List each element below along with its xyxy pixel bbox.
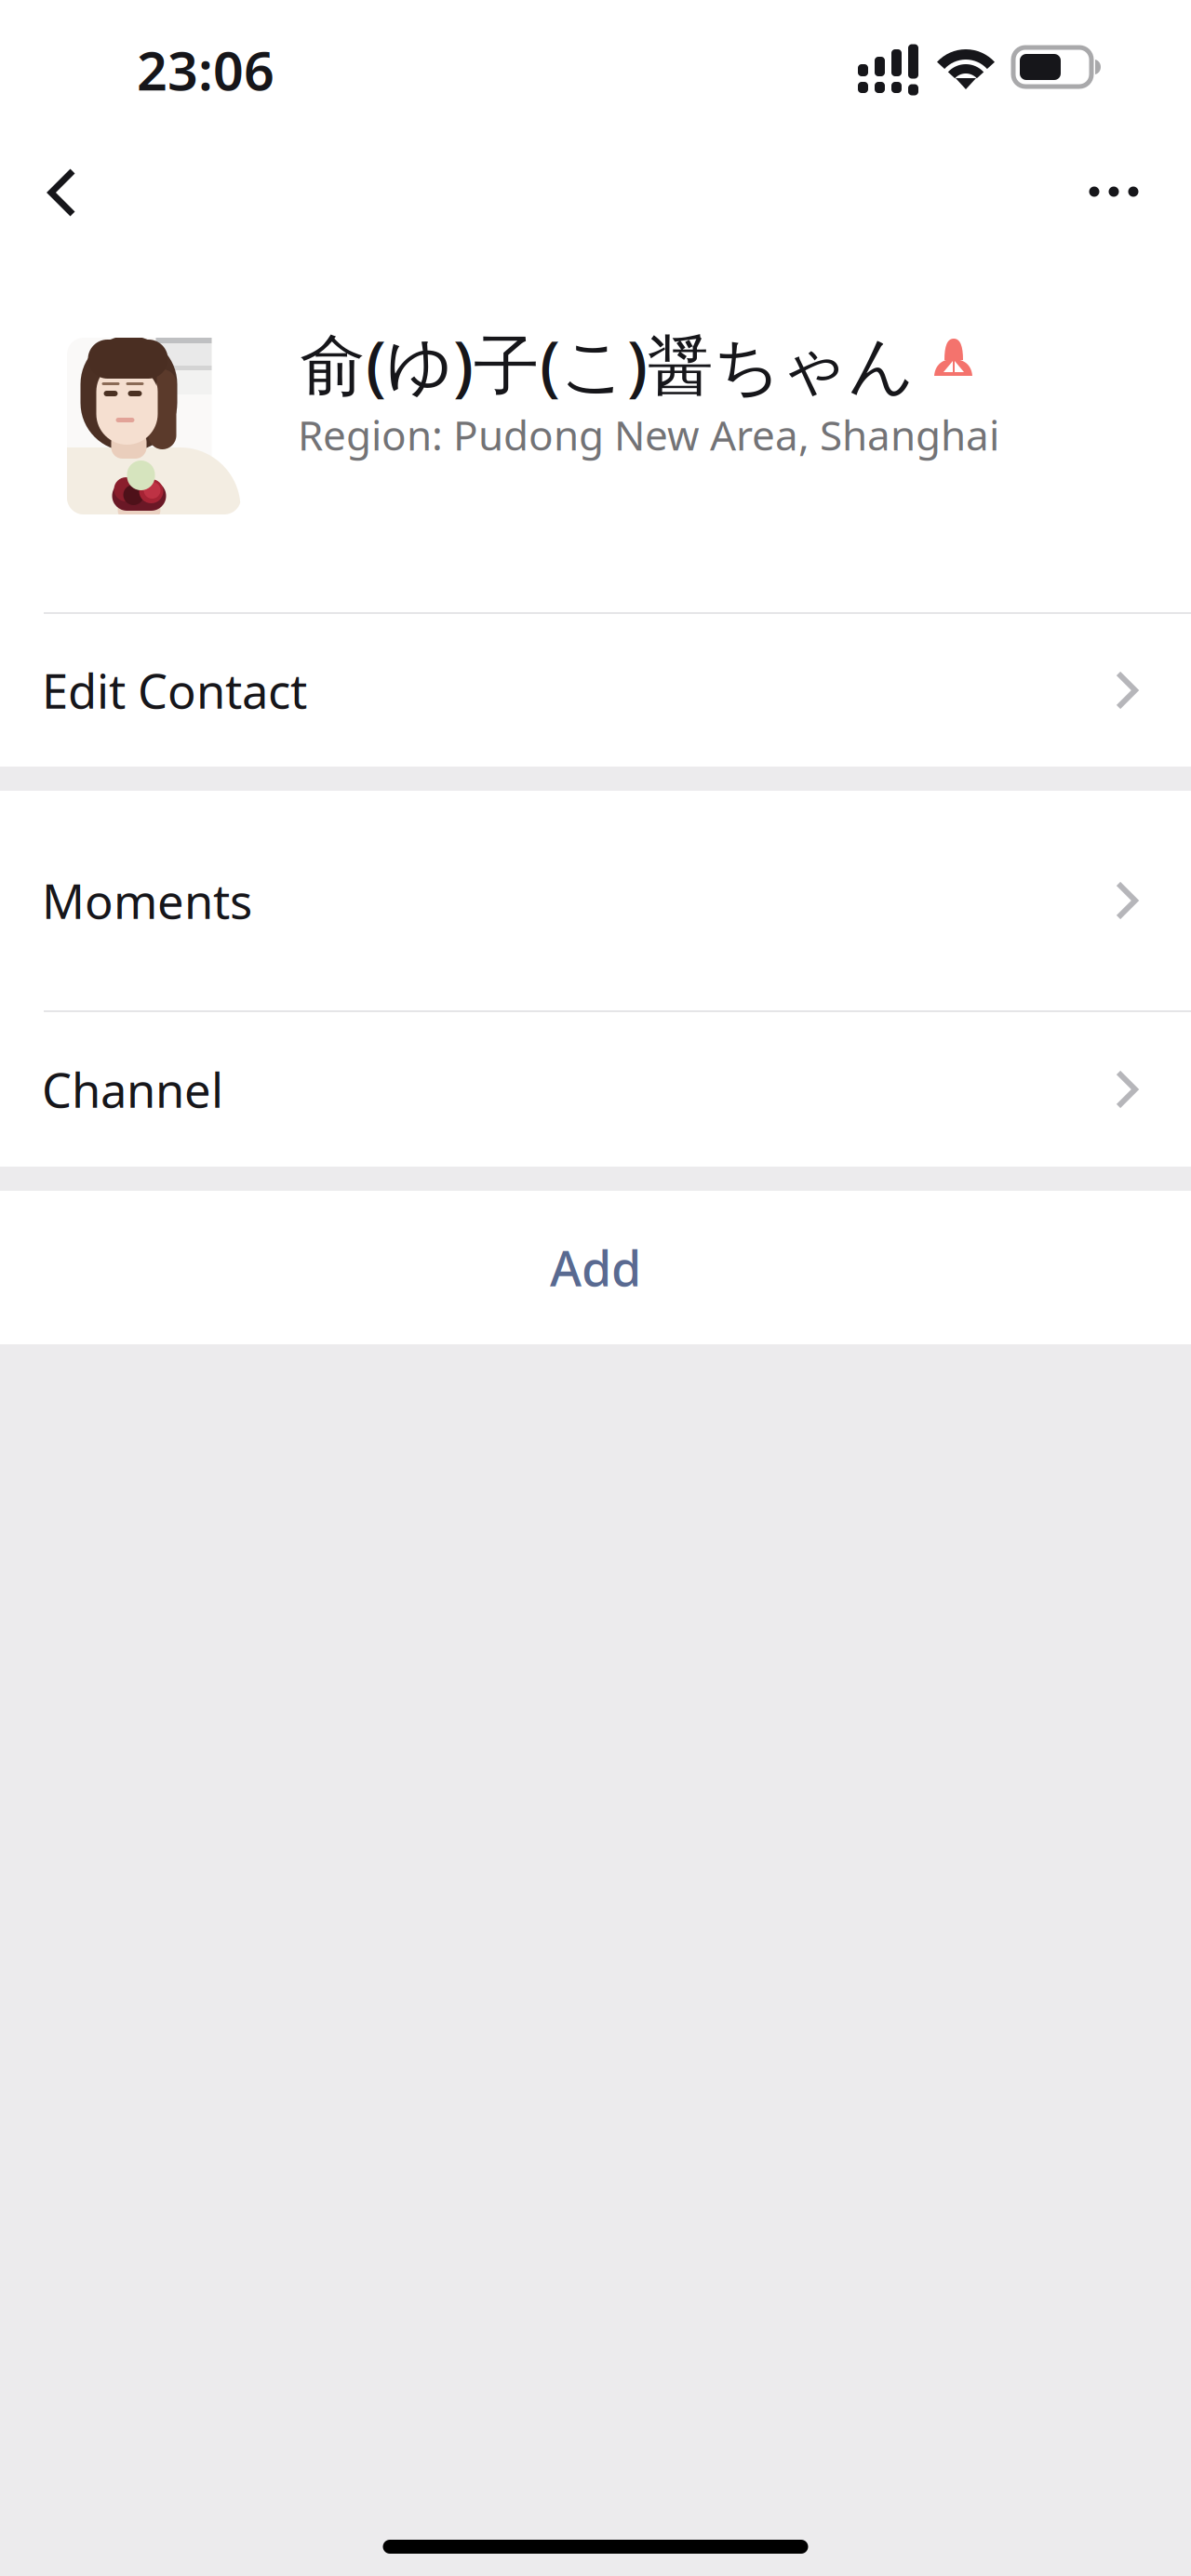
button[interactable]: 俞(ゆ)子(こ)醤ちゃん — [0, 240, 1191, 612]
staticText: Channel — [42, 1058, 223, 1121]
staticText: 23:06 — [137, 34, 274, 105]
staticText: 俞(ゆ)子(こ)醤ちゃん — [300, 320, 915, 407]
button[interactable]: Back — [0, 138, 119, 240]
staticText: Add — [550, 1235, 641, 1300]
button[interactable]: More — [1054, 140, 1173, 243]
button[interactable]: Add — [0, 1191, 1191, 1344]
button[interactable]: Channel — [0, 1012, 1191, 1167]
staticText: Edit Contact — [42, 659, 307, 722]
button[interactable]: Moments — [0, 791, 1191, 1010]
button[interactable]: Edit Contact — [0, 614, 1191, 767]
staticText: Region: Pudong New Area, Shanghai — [298, 407, 999, 462]
staticText: Moments — [42, 869, 252, 932]
